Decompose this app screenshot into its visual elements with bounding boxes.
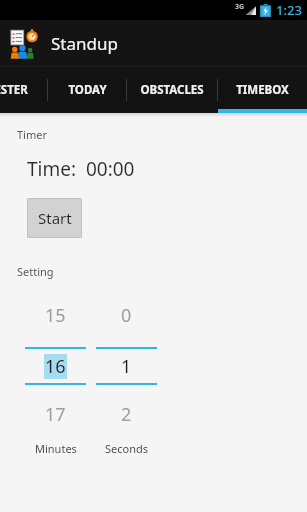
button[interactable]: 16 — [25, 353, 86, 379]
staticText: 0 — [121, 303, 132, 328]
staticText: YESTERDAY — [0, 82, 31, 98]
staticText: Standup — [51, 32, 118, 55]
staticText: Minutes — [35, 441, 77, 456]
staticText: Seconds — [105, 441, 149, 456]
staticText: Start — [38, 208, 72, 228]
button[interactable]: 15 — [25, 301, 86, 329]
staticText: 1 — [121, 354, 132, 379]
button[interactable]: 17 — [25, 401, 86, 427]
staticText: 2 — [121, 402, 132, 427]
staticText: 1:23 — [276, 1, 302, 19]
button[interactable]: OBSTACLES — [127, 66, 217, 113]
button[interactable]: 1 — [96, 353, 157, 379]
staticText: 15 — [45, 303, 66, 328]
button[interactable]: TODAY — [48, 66, 126, 113]
staticText: OBSTACLES — [140, 82, 204, 98]
staticText: 16 — [45, 354, 66, 379]
button[interactable]: YESTERDAY — [0, 66, 47, 113]
staticText: 17 — [45, 402, 66, 427]
staticText: Time: 00:00 — [27, 156, 135, 182]
staticText: Timer — [17, 127, 47, 142]
button[interactable]: Start — [27, 198, 82, 238]
button[interactable]: TIMEBOX — [218, 66, 307, 113]
staticText: 3G — [235, 2, 245, 12]
staticText: TIMEBOX — [236, 82, 289, 98]
button[interactable]: 2 — [96, 401, 157, 427]
staticText: TODAY — [68, 82, 107, 98]
staticText: Setting — [17, 264, 54, 279]
button[interactable]: 0 — [96, 301, 157, 329]
